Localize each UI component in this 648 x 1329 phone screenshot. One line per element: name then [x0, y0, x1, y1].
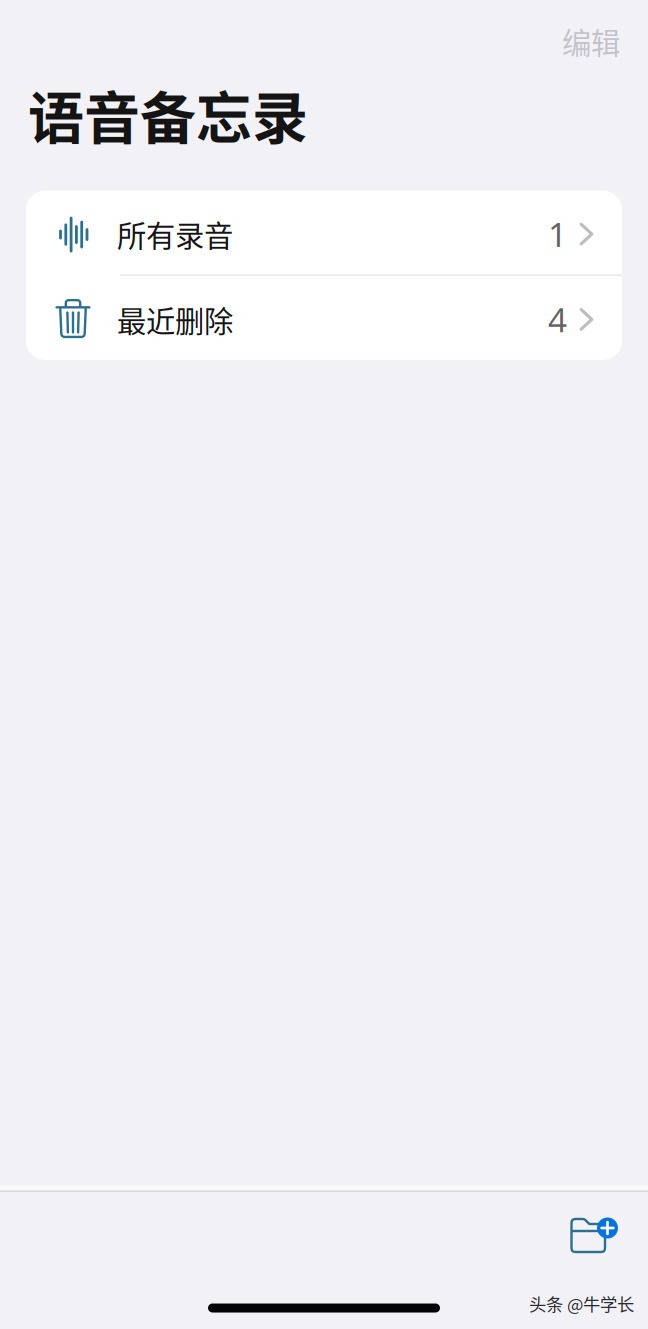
staticText: 1 — [548, 212, 567, 256]
staticText: 编辑 — [562, 20, 620, 62]
staticText: 头条 @牛学长 — [529, 1291, 634, 1316]
staticText: 语音备忘录 — [28, 73, 308, 155]
button[interactable]: 编辑 — [548, 10, 634, 72]
button[interactable]: 新建文件夹 — [555, 1208, 633, 1270]
staticText: 所有录音 — [117, 213, 233, 255]
button[interactable]: 最近删除 — [26, 276, 622, 360]
button[interactable]: 所有录音 — [26, 191, 622, 275]
staticText: 4 — [548, 297, 567, 341]
staticText: 最近删除 — [117, 298, 233, 341]
